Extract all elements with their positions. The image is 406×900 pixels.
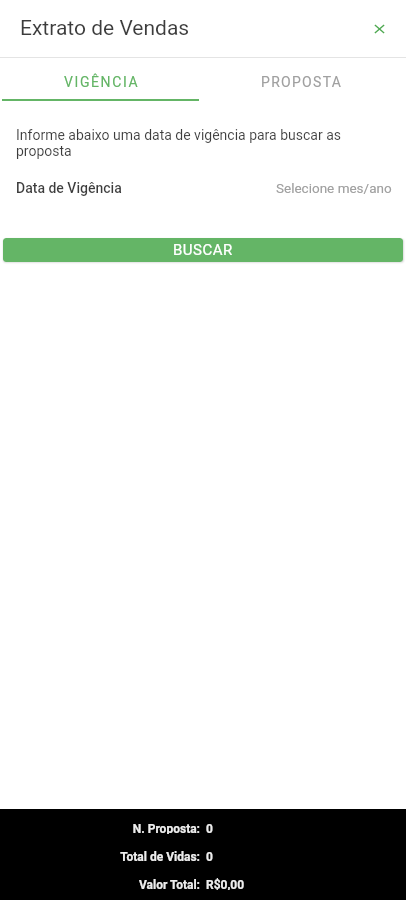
staticText: R$0,00 <box>206 878 245 890</box>
button[interactable]: VIGÊNCIA <box>0 61 203 102</box>
button[interactable]: Close <box>357 7 401 51</box>
staticText: BUSCAR <box>173 241 233 259</box>
button[interactable]: Data de Vigência <box>0 180 406 196</box>
button[interactable]: PROPOSTA <box>203 61 406 102</box>
staticText: VIGÊNCIA <box>64 74 140 90</box>
staticText: Selecione mes/ano <box>276 180 392 196</box>
staticText: Extrato de Vendas <box>20 16 190 41</box>
staticText: PROPOSTA <box>261 74 343 90</box>
staticText: 0 <box>206 822 213 834</box>
button[interactable]: BUSCAR <box>3 238 403 262</box>
staticText: 0 <box>206 850 213 862</box>
staticText: Informe abaixo uma data de vigência para… <box>16 127 390 159</box>
staticText: Valor Total: <box>138 878 200 890</box>
staticText: N. Proposta: <box>132 822 200 834</box>
staticText: Data de Vigência <box>16 180 122 196</box>
staticText: Total de Vidas: <box>120 850 200 862</box>
